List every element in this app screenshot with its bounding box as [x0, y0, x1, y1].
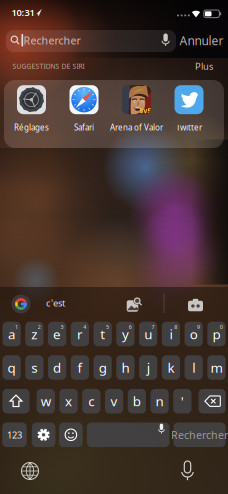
button[interactable]: Shift [2, 389, 29, 413]
staticText: t [100, 325, 105, 343]
staticText: a [8, 325, 15, 343]
button[interactable]: Twitter [174, 85, 203, 133]
button[interactable]: Annuler [175, 28, 227, 52]
button[interactable]: r [71, 322, 89, 346]
staticText: r [77, 325, 83, 343]
button[interactable]: Rechercher [173, 423, 225, 447]
staticText: 5v5 [139, 106, 151, 115]
staticText: y [122, 325, 129, 343]
staticText: Réglages [14, 122, 49, 133]
button[interactable]: Google [0, 0, 228, 494]
staticText: Arena of Valor [110, 122, 163, 133]
staticText: m [210, 359, 222, 376]
button[interactable]: c'est [40, 293, 71, 313]
staticText: q [8, 359, 16, 376]
button[interactable]: o [185, 322, 203, 346]
staticText: c [88, 392, 94, 410]
staticText: b [133, 392, 141, 410]
button[interactable]: p [207, 322, 225, 346]
staticText: s [31, 359, 37, 376]
staticText: Twitter [176, 122, 202, 133]
button[interactable]: g [93, 355, 112, 380]
button[interactable]: j [139, 355, 157, 380]
staticText: l [192, 359, 195, 376]
button[interactable]: w [37, 389, 55, 413]
staticText: v [111, 392, 118, 410]
button[interactable]: y [116, 322, 134, 346]
button[interactable]: Space [87, 423, 169, 447]
button[interactable]: i [162, 322, 180, 346]
button[interactable]: e [48, 322, 66, 346]
button[interactable]: Next keyboard [19, 460, 41, 482]
staticText: e [53, 325, 61, 343]
button[interactable]: Emoji [59, 423, 83, 447]
button[interactable]: Réglages [14, 85, 49, 133]
button[interactable]: z [25, 322, 43, 346]
staticText: d [53, 359, 61, 376]
button[interactable]: s [25, 355, 43, 380]
staticText: 8 [174, 323, 177, 330]
staticText: n [156, 392, 164, 410]
staticText: 1 [15, 323, 18, 330]
button[interactable]: c [82, 389, 100, 413]
button[interactable]: a [2, 322, 21, 346]
button[interactable]: 123 [2, 423, 27, 447]
button[interactable]: Camera [185, 296, 205, 312]
button[interactable]: f [71, 355, 89, 380]
staticText: Rechercher [171, 428, 228, 442]
staticText: 9 [197, 323, 200, 330]
button[interactable]: Safari [69, 85, 98, 133]
staticText: 4 [83, 323, 86, 330]
staticText: 2 [38, 323, 41, 330]
button[interactable]: q [2, 355, 21, 380]
button[interactable]: k [162, 355, 180, 380]
staticText: 10:31 [11, 6, 34, 19]
button[interactable]: v [105, 389, 123, 413]
staticText: 0 [220, 323, 223, 330]
staticText: h [121, 359, 129, 376]
staticText: Rechercher [23, 33, 80, 47]
staticText: Safari [74, 122, 94, 133]
button[interactable]: b [128, 389, 146, 413]
staticText: 123 [7, 429, 22, 441]
staticText: 7 [152, 323, 155, 330]
staticText: w [41, 392, 51, 410]
staticText: SUGGESTIONS DE SIRI [12, 62, 84, 71]
staticText: c'est [46, 297, 65, 309]
staticText: z [31, 325, 37, 343]
button[interactable]: n [150, 389, 169, 413]
staticText: Annuler [179, 32, 223, 48]
button[interactable]: Rechercher [0, 0, 228, 494]
button[interactable]: l [185, 355, 203, 380]
button[interactable]: ' [173, 389, 191, 413]
button[interactable]: 5v5 [110, 85, 163, 133]
staticText: k [167, 359, 174, 376]
staticText: ' [181, 392, 184, 410]
button[interactable]: t [93, 322, 112, 346]
button[interactable]: Image search [125, 295, 143, 313]
button[interactable]: h [116, 355, 134, 380]
staticText: 3 [60, 323, 63, 330]
button[interactable]: u [139, 322, 157, 346]
staticText: j [147, 359, 150, 376]
button[interactable]: Settings [32, 423, 55, 447]
staticText: u [144, 325, 152, 343]
button[interactable]: d [48, 355, 66, 380]
button[interactable]: x [59, 389, 78, 413]
staticText: o [190, 325, 198, 343]
staticText: g [99, 359, 107, 376]
button[interactable]: m [207, 355, 225, 380]
staticText: i [169, 325, 172, 343]
staticText: Plus [195, 60, 213, 72]
staticText: f [77, 359, 82, 376]
staticText: x [65, 392, 72, 410]
staticText: 6 [129, 323, 132, 330]
staticText: 5 [106, 323, 109, 330]
staticText: p [212, 325, 220, 343]
button[interactable]: Plus [192, 58, 216, 74]
button[interactable]: Dictation [178, 459, 196, 483]
button[interactable]: Delete [198, 389, 225, 413]
